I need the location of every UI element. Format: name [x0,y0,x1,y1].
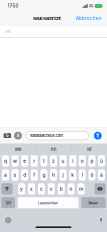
staticText: i [72,158,73,164]
button[interactable]: Return [81,197,106,208]
staticText: y [20,186,23,192]
staticText: e [23,158,26,164]
staticText: w [13,158,17,164]
button[interactable]: ich [36,143,71,155]
button[interactable]: u [60,155,67,167]
staticText: Abbrechen [76,16,102,21]
button[interactable]: d [21,169,28,181]
button[interactable]: o [79,155,86,167]
staticText: 123 [6,201,11,205]
staticText: z [52,158,55,164]
button[interactable]: s [12,169,19,181]
staticText: h [52,172,55,178]
staticText: p [90,158,93,164]
button[interactable]: h [50,169,57,181]
button[interactable]: 123 [1,197,15,208]
button[interactable]: Shift [1,183,12,194]
staticText: u [62,158,65,164]
button[interactable]: l [79,169,86,181]
button[interactable]: Camera [4,131,11,141]
button[interactable]: y [18,183,25,194]
button[interactable]: Emoji [5,217,11,223]
staticText: j [63,172,64,178]
button[interactable]: e [21,155,28,167]
button[interactable]: q [2,155,9,167]
button[interactable]: Leerzeichen [18,197,78,208]
button[interactable]: Apps [14,131,22,141]
staticText: d [23,172,26,178]
staticText: c [40,186,43,192]
staticText: 17:50 [7,3,18,9]
button[interactable]: t [40,155,47,167]
staticText: a [4,172,7,178]
staticText: n [70,186,73,192]
staticText: o [81,158,84,164]
staticText: b [60,186,63,192]
staticText: x [99,187,101,191]
staticText: und [15,147,21,152]
staticText: f [33,172,35,178]
button[interactable]: w [12,155,19,167]
button[interactable]: i [69,155,76,167]
button[interactable]: n [68,183,75,194]
staticText: notebookcheck.com [29,133,63,138]
staticText: A [16,133,19,138]
staticText: r [33,158,35,164]
button[interactable]: Send [94,131,102,141]
button[interactable]: Delete [94,183,106,194]
button[interactable]: Dictate [100,218,102,223]
staticText: An: [5,29,11,34]
staticText: m [79,186,83,192]
staticText: g [42,172,45,178]
staticText: Return [88,201,98,205]
button[interactable]: b [58,183,65,194]
staticText: q [4,158,7,164]
button[interactable]: Abbrechen [76,12,107,25]
button[interactable]: m [77,183,84,194]
staticText: v [50,186,53,192]
button[interactable]: a [2,169,9,181]
staticText: ich [51,147,56,152]
button[interactable]: und [0,143,35,155]
staticText: k [71,172,74,178]
button[interactable]: ist [72,143,107,155]
button[interactable]: ö [88,169,95,181]
staticText: ü [100,158,103,164]
button[interactable]: c [38,183,45,194]
staticText: Leerzeichen [38,201,58,205]
staticText: x [30,186,33,192]
button[interactable]: v [48,183,55,194]
staticText: t [43,158,45,164]
button[interactable]: g [40,169,47,181]
staticText: ist [87,147,91,152]
button[interactable]: f [31,169,38,181]
staticText: Neue Nachricht [33,16,60,21]
staticText: l [82,172,83,178]
staticText: ö [90,172,93,178]
button[interactable]: x [28,183,35,194]
button[interactable]: j [60,169,67,181]
button[interactable]: p [88,155,95,167]
staticText: s [14,172,17,178]
button[interactable]: z [50,155,57,167]
staticText: ä [100,172,103,178]
button[interactable]: r [31,155,38,167]
button[interactable]: ü [98,155,105,167]
button[interactable]: k [69,169,76,181]
staticText: 3G [89,4,94,8]
button[interactable]: ä [98,169,105,181]
